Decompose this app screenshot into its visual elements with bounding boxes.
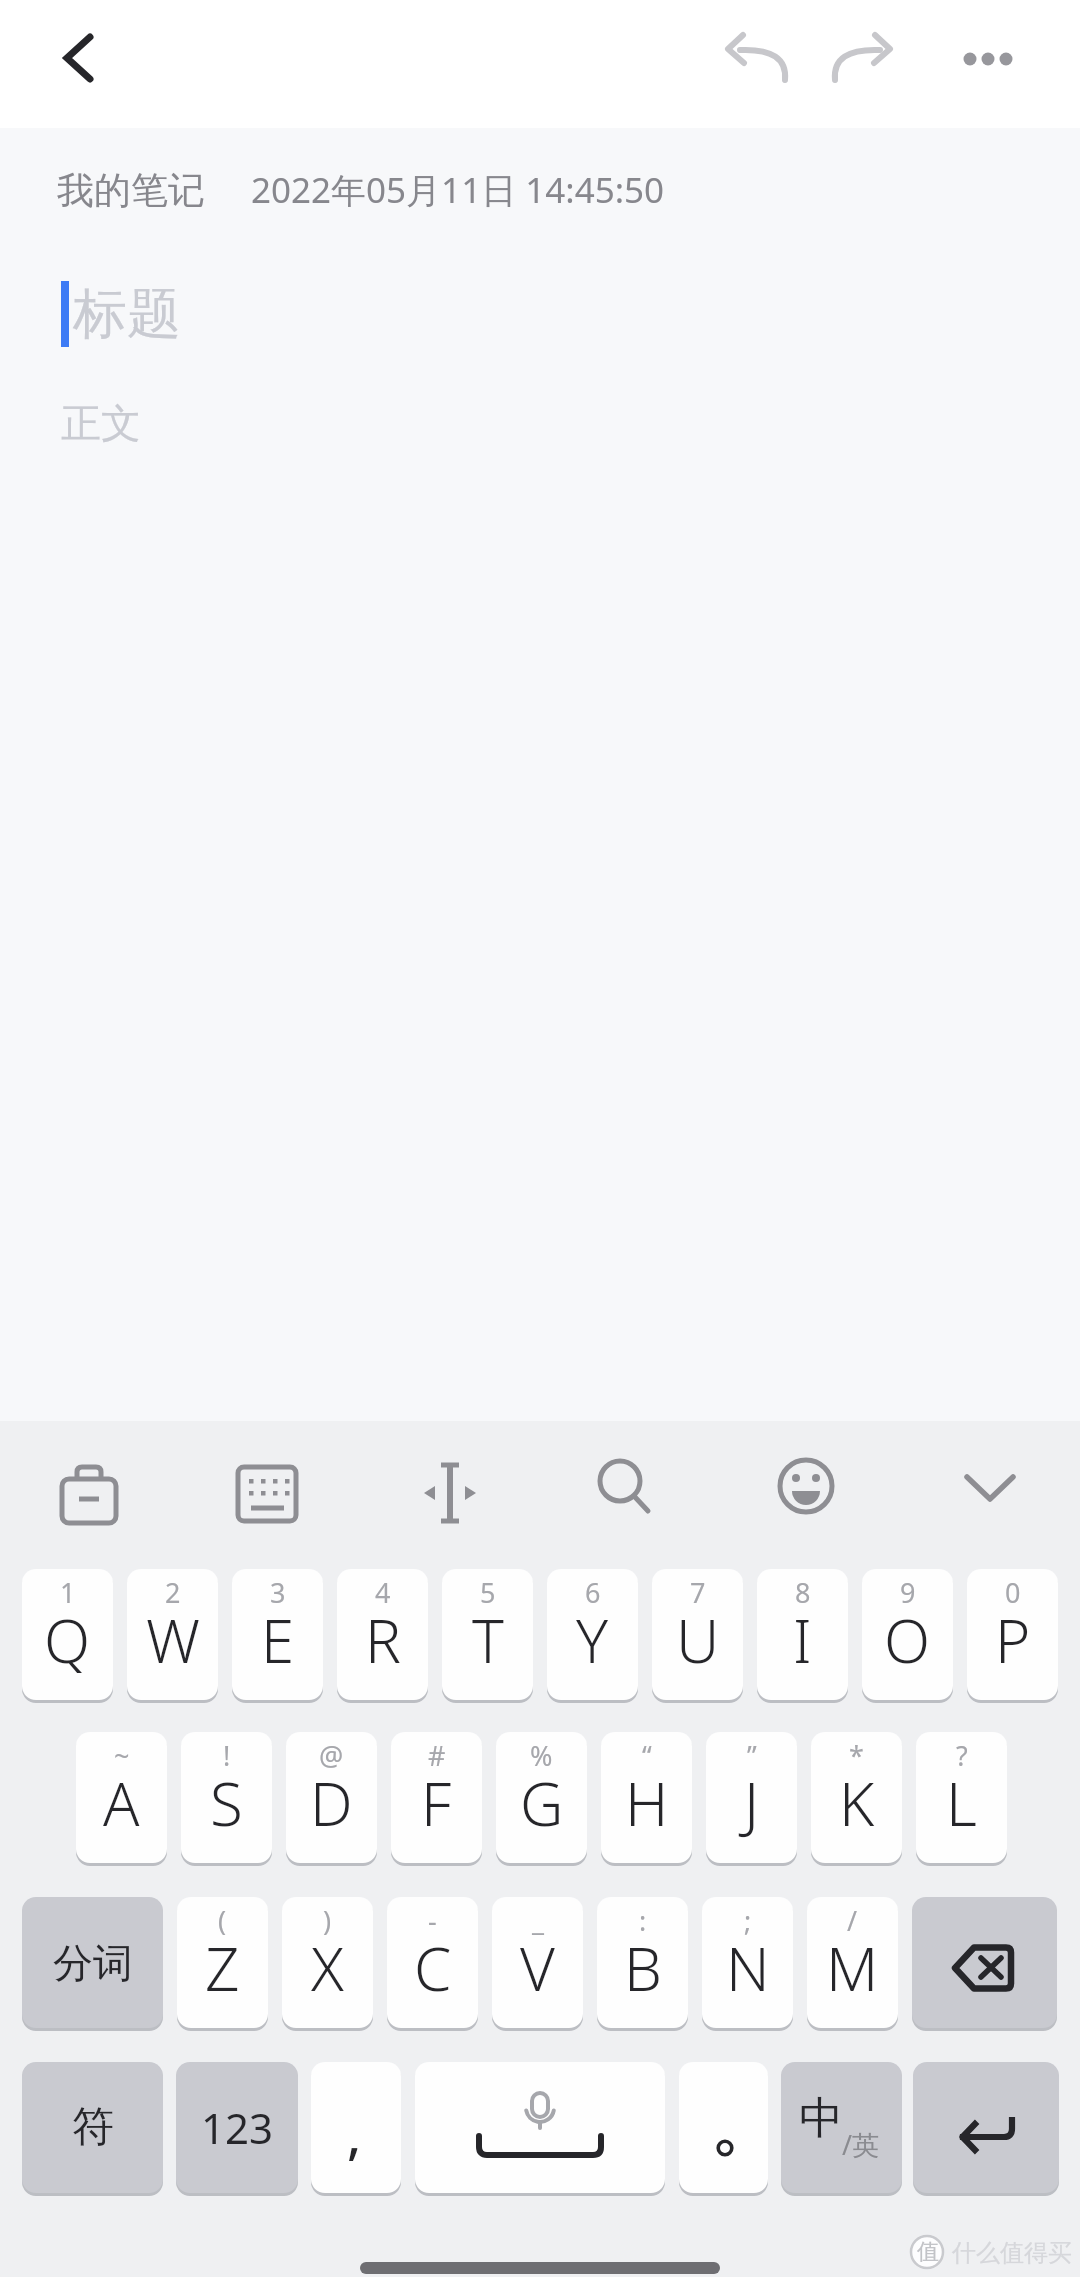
button[interactable]: , — [311, 2062, 401, 2196]
button[interactable]: - — [387, 1897, 478, 2031]
staticText: E — [261, 1599, 295, 1681]
button[interactable] — [913, 2062, 1059, 2196]
button[interactable]: 8 — [757, 1569, 848, 1703]
staticText: 3 — [270, 1574, 286, 1611]
staticText: ! — [223, 1737, 231, 1774]
staticText: 8 — [795, 1574, 811, 1611]
button[interactable]: * — [811, 1732, 902, 1866]
button[interactable]: 123 — [176, 2062, 298, 2196]
staticText: ) — [323, 1902, 332, 1939]
button[interactable] — [761, 1441, 851, 1531]
staticText: W — [146, 1599, 200, 1681]
button[interactable]: 9 — [862, 1569, 953, 1703]
button[interactable] — [44, 1441, 134, 1531]
staticText: 什么值得买 — [952, 2238, 1072, 2268]
staticText: K — [839, 1762, 875, 1844]
button[interactable]: 2 — [127, 1569, 218, 1703]
staticText: O — [884, 1599, 931, 1681]
staticText: 中 — [799, 2091, 843, 2146]
button[interactable]: “ — [601, 1732, 692, 1866]
staticText: “ — [642, 1737, 652, 1774]
staticText: Q — [44, 1599, 91, 1681]
button[interactable] — [415, 2062, 665, 2196]
button[interactable] — [912, 1897, 1057, 2031]
staticText: : — [639, 1902, 647, 1939]
staticText: R — [365, 1599, 401, 1681]
staticText: 123 — [201, 2099, 274, 2156]
button[interactable]: / — [807, 1897, 898, 2031]
button[interactable] — [712, 12, 802, 102]
staticText: M — [826, 1927, 879, 2009]
staticText: ? — [956, 1737, 968, 1774]
staticText: G — [520, 1762, 564, 1844]
staticText: Z — [205, 1927, 240, 2009]
button[interactable]: 中 — [781, 2062, 902, 2196]
staticText: U — [676, 1599, 720, 1681]
staticText: 符 — [72, 2101, 114, 2154]
staticText: J — [744, 1762, 760, 1844]
button[interactable]: ? — [916, 1732, 1007, 1866]
staticText: % — [530, 1737, 553, 1774]
staticText: /英 — [842, 2126, 880, 2163]
staticText: ( — [218, 1902, 227, 1939]
button[interactable]: 6 — [547, 1569, 638, 1703]
staticText: P — [995, 1599, 1031, 1681]
button[interactable]: ; — [702, 1897, 793, 2031]
button[interactable]: @ — [286, 1732, 377, 1866]
button[interactable]: 0 — [967, 1569, 1058, 1703]
button[interactable]: ! — [181, 1732, 272, 1866]
button[interactable]: 7 — [652, 1569, 743, 1703]
button[interactable]: ( — [177, 1897, 268, 2031]
staticText: 标题 — [73, 280, 181, 348]
staticText: X — [311, 1927, 344, 2009]
button[interactable] — [945, 1441, 1035, 1531]
staticText: 我的笔记 — [57, 167, 205, 214]
staticText: D — [310, 1762, 353, 1844]
button[interactable] — [34, 14, 122, 102]
staticText: @ — [319, 1737, 344, 1774]
staticText: , — [347, 2098, 362, 2169]
staticText: 7 — [690, 1574, 706, 1611]
staticText: 0 — [1005, 1574, 1021, 1611]
button[interactable]: ” — [706, 1732, 797, 1866]
staticText: Y — [576, 1599, 609, 1681]
staticText: T — [472, 1599, 504, 1681]
staticText: F — [421, 1762, 452, 1844]
button[interactable]: 1 — [22, 1569, 113, 1703]
button[interactable] — [405, 1441, 495, 1531]
button[interactable]: 分词 — [22, 1897, 163, 2031]
staticText: / — [847, 1902, 858, 1939]
staticText: A — [103, 1762, 140, 1844]
button[interactable]: % — [496, 1732, 587, 1866]
button[interactable] — [679, 2062, 768, 2196]
button[interactable]: 5 — [442, 1569, 533, 1703]
staticText: - — [428, 1902, 437, 1939]
staticText: C — [414, 1927, 452, 2009]
staticText: 分词 — [53, 1938, 133, 1988]
staticText: B — [624, 1927, 662, 2009]
button[interactable]: ~ — [76, 1732, 167, 1866]
staticText: 9 — [900, 1574, 916, 1611]
staticText: * — [849, 1737, 864, 1774]
button[interactable] — [222, 1441, 312, 1531]
button[interactable]: 3 — [232, 1569, 323, 1703]
staticText: 1 — [60, 1574, 76, 1611]
button[interactable]: 符 — [22, 2062, 163, 2196]
staticText: ” — [747, 1737, 757, 1774]
staticText: 正文 — [61, 398, 141, 448]
staticText: N — [726, 1927, 770, 2009]
staticText: 2 — [165, 1574, 181, 1611]
staticText: L — [946, 1762, 977, 1844]
button[interactable]: ) — [282, 1897, 373, 2031]
button[interactable]: 4 — [337, 1569, 428, 1703]
staticText: 6 — [585, 1574, 601, 1611]
button[interactable] — [815, 12, 905, 102]
button[interactable]: : — [597, 1897, 688, 2031]
button[interactable] — [943, 13, 1033, 103]
staticText: 2022年05月11日 14:45:50 — [251, 166, 665, 214]
button[interactable]: # — [391, 1732, 482, 1866]
staticText: # — [428, 1737, 446, 1774]
button[interactable]: _ — [492, 1897, 583, 2031]
staticText: V — [520, 1927, 555, 2009]
button[interactable] — [579, 1441, 669, 1531]
